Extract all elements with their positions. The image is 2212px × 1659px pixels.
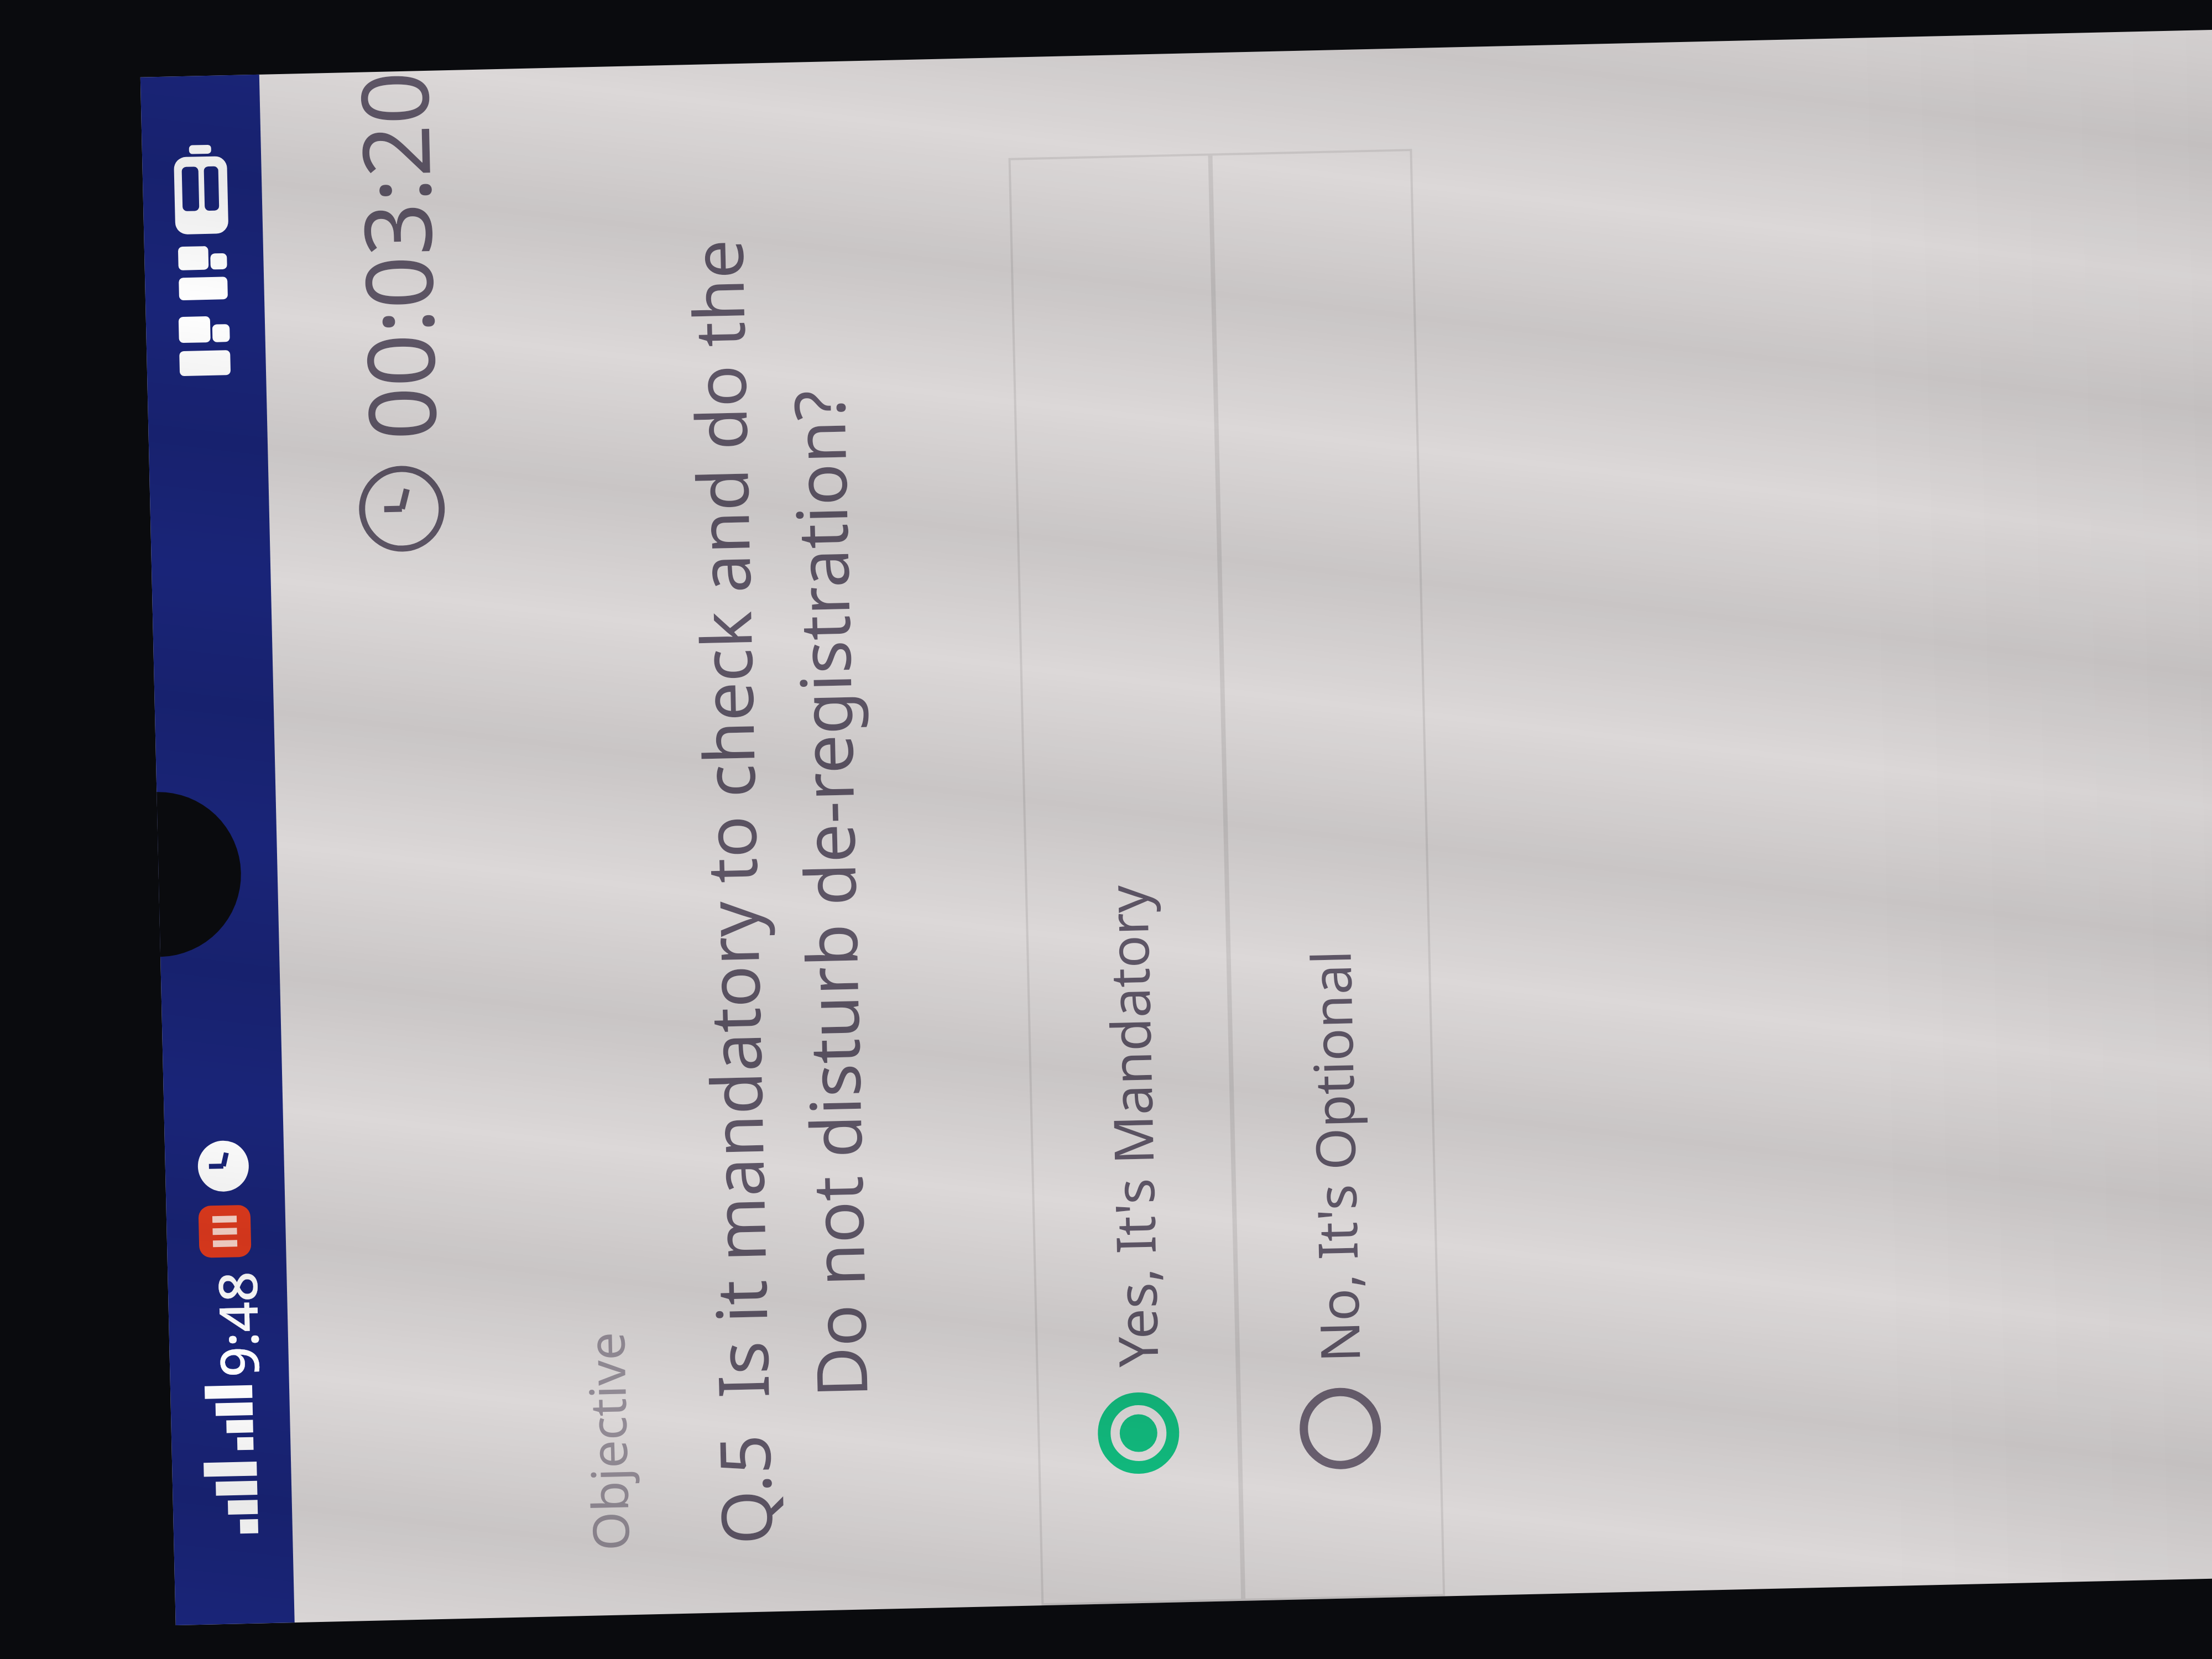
button[interactable]: Selected option [1008,153,1243,1605]
button[interactable]: Option [1210,149,1445,1601]
other: Option [1297,1385,1384,1472]
staticText: Objective [571,1331,644,1551]
other: Selected option [1095,1389,1182,1477]
staticText: Yes, It's Mandatory [1089,884,1174,1368]
staticText: Q.5 Is it mandatory to check and do the … [668,236,891,1546]
staticText: 00:03:20 [328,70,463,442]
staticText: 9:48 [200,1271,275,1378]
staticText: No, It's Optional [1293,949,1376,1363]
